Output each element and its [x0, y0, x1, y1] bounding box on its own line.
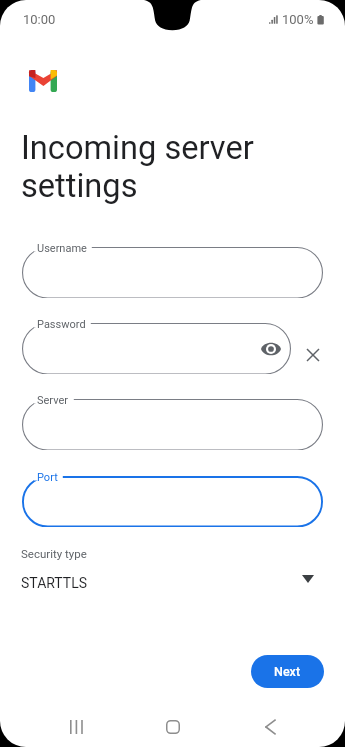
button[interactable]: Password [22, 316, 291, 374]
button[interactable]: Recent apps [52, 703, 100, 747]
staticText: Server [37, 394, 69, 407]
staticText: STARTTLS [21, 575, 88, 591]
button[interactable]: Username [22, 240, 323, 298]
button[interactable]: Show password [259, 337, 283, 361]
button[interactable]: Back [246, 703, 294, 747]
staticText: Incoming server settings [21, 129, 254, 205]
button[interactable]: Security type [0, 542, 345, 594]
button[interactable]: Home [149, 703, 197, 747]
staticText: Port [37, 471, 58, 484]
staticText: Username [37, 242, 87, 255]
staticText: Password [37, 318, 86, 331]
button[interactable]: Next [251, 655, 324, 688]
staticText: Next [274, 664, 301, 679]
staticText: Security type [21, 547, 87, 560]
button[interactable]: Port [22, 469, 323, 527]
button[interactable]: Clear [302, 344, 323, 365]
staticText: 10:00 [23, 12, 56, 27]
button[interactable]: Server [22, 392, 323, 450]
staticText: 100% [282, 12, 314, 27]
